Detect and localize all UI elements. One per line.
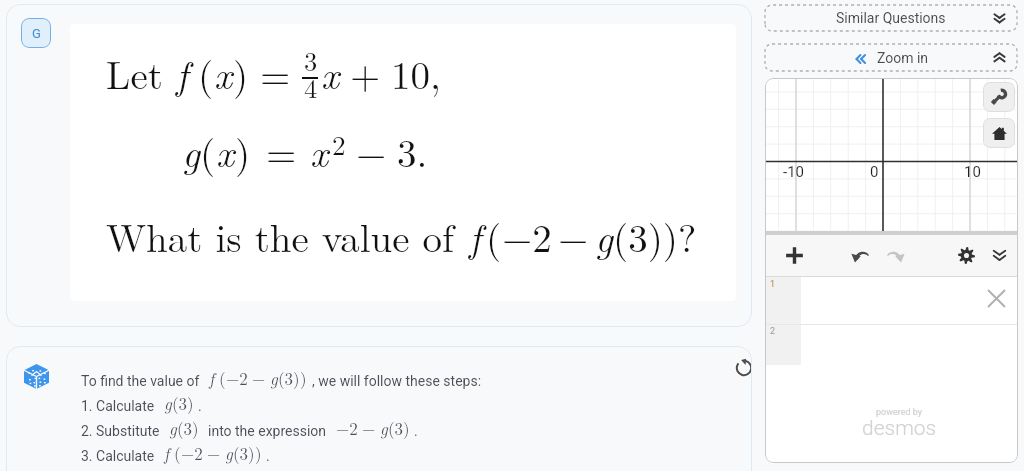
staticText: into the expression	[208, 423, 327, 439]
button[interactable]: Redo	[881, 235, 911, 276]
staticText: desmos	[862, 416, 937, 441]
button[interactable]: Similar Questions	[765, 5, 1017, 31]
staticText: 3. Calculate	[81, 448, 155, 464]
staticText: =	[266, 123, 297, 178]
staticText: −2	[181, 441, 203, 465]
staticText: (3)	[278, 366, 300, 390]
staticText: What is the value of	[106, 208, 454, 263]
staticText: g	[595, 208, 613, 263]
staticText: −	[252, 366, 266, 390]
staticText: x	[321, 45, 340, 100]
staticText: Similar Questions	[836, 10, 946, 26]
staticText: , we will follow these steps:	[312, 373, 482, 389]
staticText: 2	[770, 326, 776, 337]
staticText: 2. Substitute	[81, 423, 160, 439]
staticText: x	[216, 123, 235, 178]
staticText: =	[260, 45, 291, 100]
staticText: )	[300, 366, 307, 390]
staticText: )	[255, 441, 262, 465]
staticText: powered by	[876, 407, 923, 418]
staticText: (	[219, 366, 226, 390]
staticText: .	[266, 448, 270, 464]
button[interactable]: Reset view	[983, 118, 1015, 148]
button[interactable]: Collapse panel	[985, 235, 1013, 276]
staticText: g	[270, 366, 278, 390]
staticText: -10	[783, 163, 805, 181]
staticText: x	[214, 45, 233, 100]
staticText: 1. Calculate	[81, 398, 155, 414]
staticText: g	[164, 391, 172, 415]
button[interactable]: G	[21, 18, 51, 48]
staticText: Zoom in	[877, 50, 929, 66]
staticText: g	[169, 416, 177, 440]
staticText: Let	[106, 45, 163, 100]
staticText: 3	[304, 41, 318, 79]
staticText: 10,	[391, 45, 441, 100]
button[interactable]: Regenerate answer	[6, 346, 752, 471]
staticText: To find the value of	[81, 373, 200, 389]
staticText: x	[310, 123, 329, 178]
button[interactable]: G	[6, 4, 752, 327]
staticText: 10	[964, 163, 981, 181]
button[interactable]: Graph settings	[952, 235, 980, 276]
staticText: f	[164, 441, 170, 465]
staticText: 4	[304, 68, 318, 106]
staticText: −	[558, 208, 589, 263]
staticText: )	[233, 45, 249, 100]
staticText: −	[356, 123, 387, 178]
staticText: )	[235, 123, 251, 178]
staticText: f	[469, 208, 481, 263]
button[interactable]: Undo	[845, 235, 875, 276]
button[interactable]: Zoom in	[765, 44, 1017, 71]
staticText: g	[182, 123, 200, 178]
staticText: (3))?	[613, 208, 697, 263]
button[interactable]: Remove expression	[987, 289, 1006, 308]
staticText: f	[176, 45, 188, 100]
staticText: (	[174, 441, 181, 465]
staticText: .	[198, 398, 202, 414]
staticText: +	[350, 45, 381, 100]
staticText: −2	[336, 416, 358, 440]
staticText: 3.	[397, 123, 428, 178]
staticText: −2	[226, 366, 248, 390]
staticText: −2	[502, 208, 552, 263]
staticText: −	[207, 441, 221, 465]
staticText: (3)	[177, 416, 199, 440]
staticText: 2	[332, 124, 346, 163]
staticText: g	[225, 441, 233, 465]
staticText: (3)	[172, 391, 194, 415]
button[interactable]: Add expression	[777, 235, 811, 276]
staticText: (3)	[388, 416, 410, 440]
staticText: 0	[870, 163, 879, 181]
staticText: G	[32, 26, 41, 41]
staticText: f	[209, 366, 215, 390]
staticText: −	[362, 416, 376, 440]
staticText: 1	[770, 279, 776, 290]
staticText: g	[380, 416, 388, 440]
staticText: .	[414, 423, 418, 439]
staticText: (	[198, 45, 214, 100]
button[interactable]: Regenerate answer	[734, 358, 752, 378]
button[interactable]: Graph tools	[983, 82, 1015, 112]
staticText: (3)	[233, 441, 255, 465]
staticText: (	[200, 123, 216, 178]
staticText: (	[486, 208, 502, 263]
